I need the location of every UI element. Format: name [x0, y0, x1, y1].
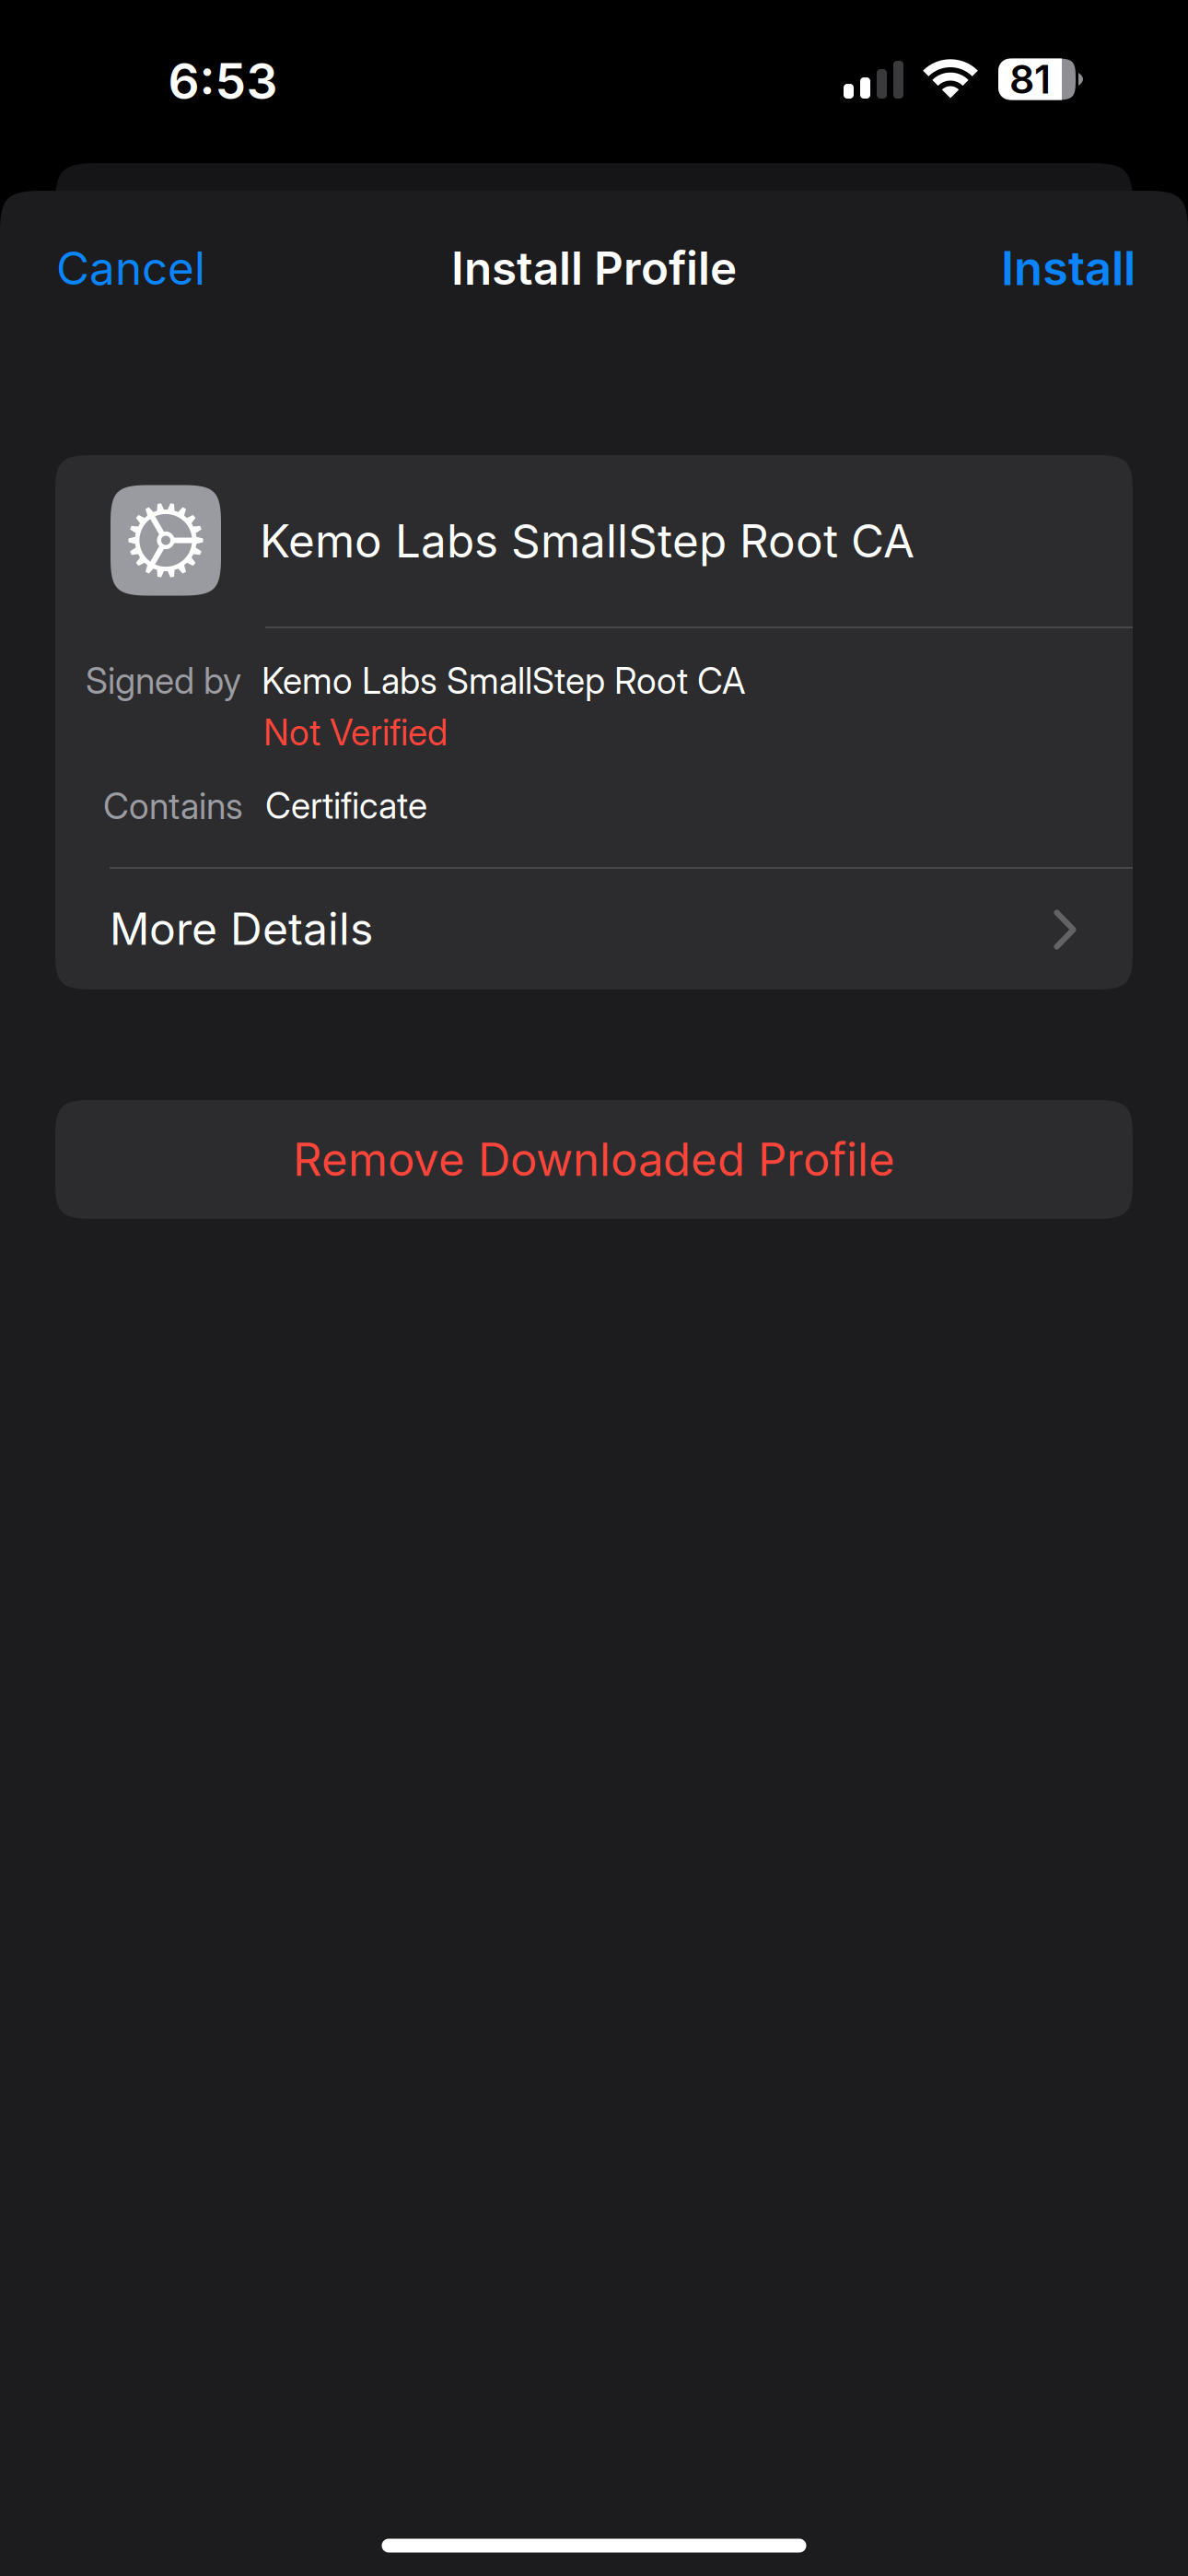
button[interactable]: More Details [55, 869, 1133, 989]
button[interactable]: Cancel [52, 207, 209, 329]
staticText: Signed by [86, 659, 241, 702]
staticText: Cancel [56, 241, 205, 296]
staticText: More Details [110, 902, 373, 955]
staticText: Install Profile [451, 241, 737, 296]
staticText: Not Verified [263, 711, 448, 754]
staticText: Contains [103, 785, 243, 828]
button[interactable]: Install [995, 207, 1142, 329]
staticText: Certificate [265, 784, 427, 827]
staticText: Kemo Labs SmallStep Root CA [260, 513, 914, 568]
staticText: 81 [1009, 55, 1051, 103]
staticText: Install [1001, 240, 1136, 296]
staticText: 6:53 [168, 51, 278, 111]
staticText: Remove Downloaded Profile [293, 1132, 895, 1187]
staticText: Kemo Labs SmallStep Root CA [262, 659, 745, 702]
button[interactable]: Remove Downloaded Profile [55, 1100, 1133, 1219]
